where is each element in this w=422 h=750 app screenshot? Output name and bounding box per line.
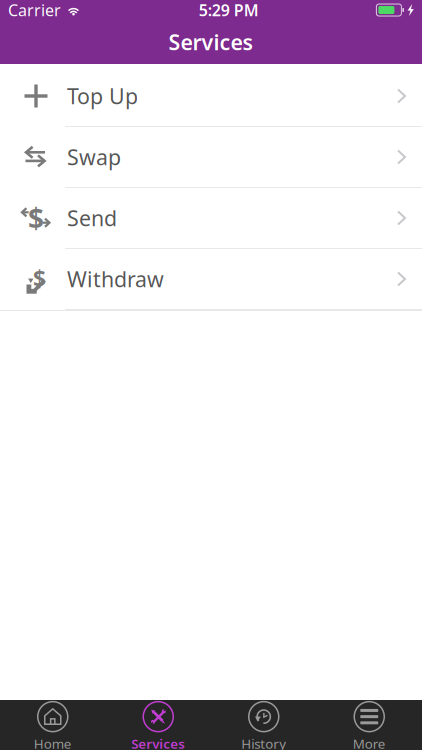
button[interactable]: History <box>211 698 316 750</box>
staticText: Carrier <box>8 0 61 21</box>
button[interactable]: Services <box>105 698 211 750</box>
button[interactable]: More <box>316 698 422 750</box>
staticText: Top Up <box>67 82 138 110</box>
staticText: 5:29 PM <box>199 0 259 21</box>
staticText: Services <box>168 28 253 56</box>
staticText: Withdraw <box>67 265 164 293</box>
staticText: Swap <box>67 143 121 171</box>
staticText: $ <box>28 199 44 237</box>
staticText: Home <box>34 735 72 750</box>
staticText: Send <box>67 204 117 232</box>
staticText: History <box>241 735 286 750</box>
button[interactable]: Swap <box>0 127 422 188</box>
staticText: More <box>353 735 386 750</box>
button[interactable]: Top Up <box>0 66 422 127</box>
button[interactable]: $ <box>0 249 422 310</box>
button[interactable]: Home <box>0 698 105 750</box>
button[interactable]: $ <box>0 188 422 249</box>
staticText: $ <box>33 263 46 294</box>
staticText: Services <box>131 735 185 750</box>
